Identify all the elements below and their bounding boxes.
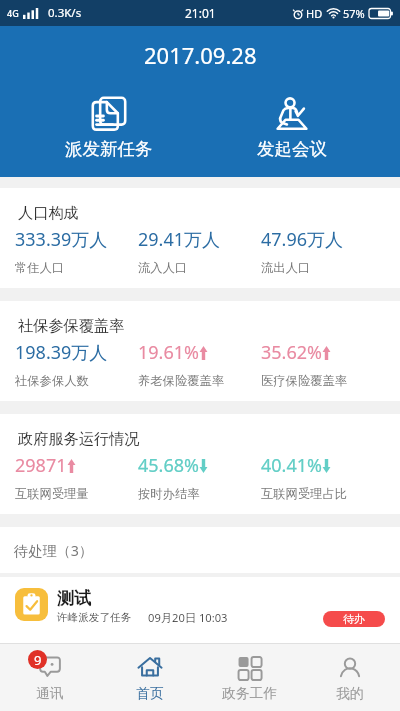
staticText: 社保参保覆盖率 [18,316,125,335]
staticText: 我的 [336,685,364,702]
staticText: 首页 [136,685,164,702]
button[interactable]: 我的 [300,644,400,711]
staticText: 4G [7,7,19,19]
staticText: 19.61% [138,340,199,365]
staticText: 社保参保人数 [15,373,89,388]
staticText: 流入人口 [138,260,188,275]
staticText: 198.39万人 [15,340,108,365]
staticText: 按时办结率 [138,486,200,501]
staticText: 29.41万人 [138,227,221,252]
staticText: 政务工作 [222,685,278,702]
staticText: 09月20日 10:03 [148,610,228,625]
staticText: 互联网受理占比 [261,486,348,501]
staticText: 40.41% [261,453,322,478]
staticText: 35.62% [261,340,322,365]
staticText: 常住人口 [15,260,65,275]
staticText: 47.96万人 [261,227,344,252]
button[interactable]: 首页 [100,644,200,711]
staticText: 待办 [343,612,365,626]
button[interactable]: 发起会议 [200,94,383,162]
button[interactable]: 9 [0,644,100,711]
staticText: 政府服务运行情况 [18,429,140,448]
staticText: HD [306,6,323,21]
staticText: 发起会议 [257,138,327,160]
button[interactable]: 测试 [0,577,400,643]
staticText: 45.68% [138,453,199,478]
staticText: 0.3K/s [48,5,82,21]
staticText: 333.39万人 [15,227,108,252]
staticText: 2017.09.28 [144,40,257,70]
staticText: 29871 [15,453,67,478]
staticText: 待处理（3） [14,541,94,560]
button[interactable]: 派发新任务 [17,94,200,162]
staticText: 许峰派发了任务 [57,611,132,624]
staticText: 养老保险覆盖率 [138,373,225,388]
staticText: 9 [34,651,42,669]
staticText: 21:01 [185,5,216,21]
staticText: 测试 [57,588,91,609]
staticText: 互联网受理量 [15,486,89,501]
staticText: 流出人口 [261,260,311,275]
staticText: 通讯 [36,685,64,702]
staticText: 派发新任务 [65,138,153,160]
staticText: 医疗保险覆盖率 [261,373,348,388]
button[interactable]: 政务工作 [200,644,300,711]
staticText: 57% [343,6,365,21]
staticText: 人口构成 [18,203,79,222]
